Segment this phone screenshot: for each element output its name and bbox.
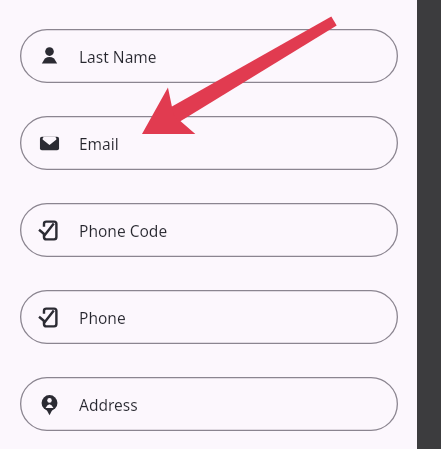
staticText: Phone	[79, 307, 126, 328]
button[interactable]: Address	[20, 377, 398, 431]
staticText: Email	[79, 133, 119, 154]
staticText: Address	[79, 394, 138, 415]
staticText: Last Name	[79, 46, 157, 67]
button[interactable]: Phone	[20, 290, 398, 344]
button[interactable]: Email	[20, 116, 398, 170]
staticText: Phone Code	[79, 220, 168, 241]
button[interactable]: Last Name	[20, 29, 398, 83]
button[interactable]: Phone Code	[20, 203, 398, 257]
